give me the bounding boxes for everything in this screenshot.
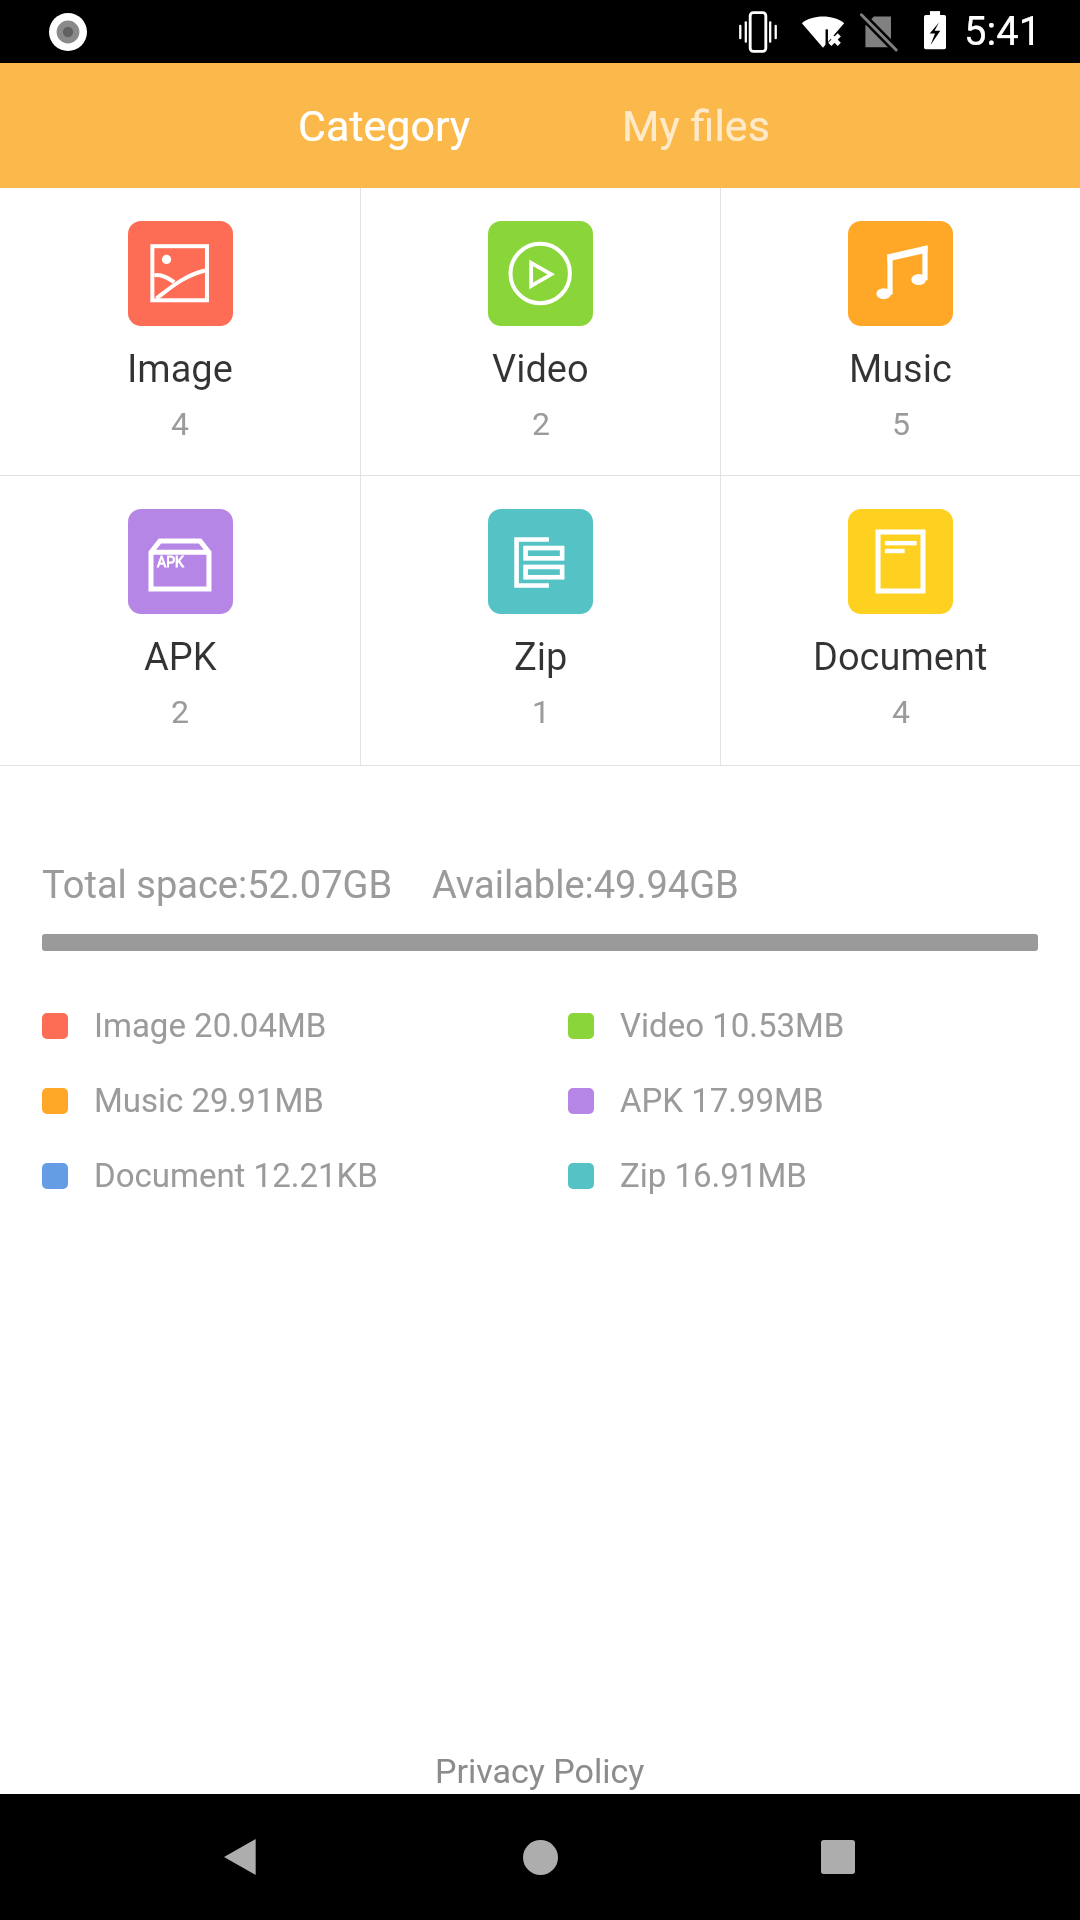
button[interactable]: Home [450, 1794, 630, 1920]
staticText: Music [849, 347, 952, 392]
staticText: Total space:52.07GB [42, 863, 393, 908]
staticText: 2 [532, 405, 550, 443]
staticText: 4 [892, 693, 910, 731]
button[interactable]: Music [721, 188, 1080, 475]
staticText: 5 [892, 405, 910, 443]
button[interactable]: Privacy Policy [0, 1751, 1080, 1794]
staticText: Video [492, 347, 589, 392]
button[interactable]: Image [0, 188, 360, 475]
staticText: 4 [171, 405, 189, 443]
staticText: Zip [514, 635, 568, 680]
staticText: APK 17.99MB [620, 1081, 824, 1120]
staticText: Image [127, 347, 233, 392]
staticText: Zip 16.91MB [620, 1156, 807, 1195]
button[interactable]: My files [540, 63, 852, 188]
staticText: Video 10.53MB [620, 1006, 845, 1045]
staticText: My files [622, 101, 770, 151]
staticText: 2 [171, 693, 189, 731]
staticText: APK [157, 554, 184, 570]
button[interactable]: Back [151, 1794, 332, 1920]
staticText: Music 29.91MB [94, 1081, 324, 1120]
staticText: APK [144, 635, 217, 680]
button[interactable]: Video [361, 188, 720, 475]
button[interactable]: Document [721, 476, 1080, 765]
button[interactable]: APK [0, 476, 360, 765]
button[interactable]: Recent apps [748, 1794, 928, 1920]
staticText: Category [298, 101, 471, 151]
staticText: Privacy Policy [435, 1751, 645, 1791]
staticText: 5:41 [964, 8, 1042, 55]
staticText: Available:49.94GB [432, 863, 739, 908]
button[interactable]: Category [228, 63, 540, 188]
staticText: Document [813, 635, 988, 680]
staticText: Document 12.21KB [94, 1156, 378, 1195]
staticText: Image 20.04MB [94, 1006, 327, 1045]
staticText: 1 [532, 693, 550, 731]
button[interactable]: Zip [361, 476, 720, 765]
